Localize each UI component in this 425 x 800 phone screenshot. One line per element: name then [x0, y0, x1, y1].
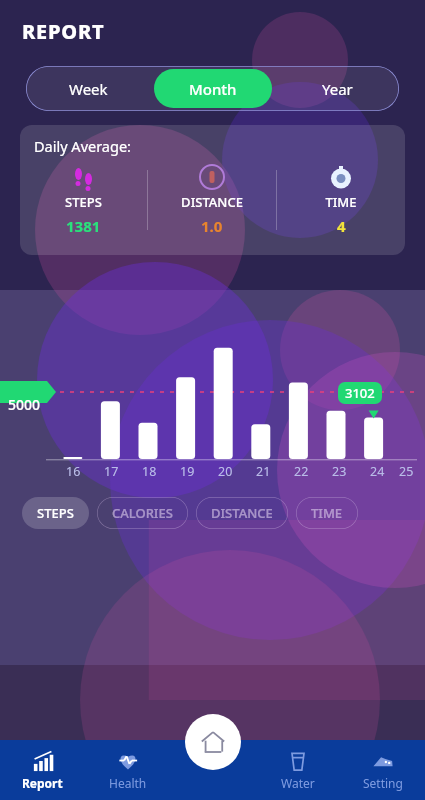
staticText: 16	[66, 463, 81, 480]
staticText: DISTANCE	[211, 504, 273, 522]
button[interactable]: TIME	[277, 164, 405, 236]
button[interactable]: TIME	[296, 497, 358, 529]
staticText: 24	[370, 463, 385, 480]
staticText: Water	[281, 775, 315, 791]
staticText: 1381	[66, 216, 101, 236]
staticText: Daily Average:	[34, 136, 131, 156]
staticText: 21	[256, 463, 271, 480]
button[interactable]: Month	[154, 69, 272, 108]
button[interactable]: Report	[0, 740, 85, 800]
staticText: 25	[399, 463, 414, 480]
button[interactable]: Home	[185, 714, 241, 770]
staticText: Year	[322, 79, 353, 99]
staticText: 22	[294, 463, 309, 480]
button[interactable]: STEPS	[20, 164, 147, 236]
staticText: REPORT	[22, 18, 105, 45]
button[interactable]: DISTANCE	[148, 164, 276, 236]
button[interactable]: STEPS	[22, 497, 89, 529]
staticText: TIME	[311, 504, 343, 522]
staticText: Health	[109, 775, 147, 791]
button[interactable]: Setting	[340, 740, 425, 800]
staticText: 19	[180, 463, 195, 480]
staticText: Week	[69, 79, 108, 99]
button[interactable]: Health	[85, 740, 170, 800]
staticText: 23	[332, 463, 347, 480]
staticText: TIME	[325, 193, 357, 211]
staticText: Setting	[363, 775, 403, 791]
staticText: 1.0	[201, 216, 223, 236]
staticText: STEPS	[37, 504, 74, 522]
staticText: 5000	[8, 395, 41, 414]
button[interactable]: Water	[255, 740, 340, 800]
button[interactable]: Week	[29, 69, 148, 108]
staticText: DISTANCE	[181, 193, 243, 211]
button[interactable]: Year	[278, 69, 396, 108]
staticText: STEPS	[65, 193, 102, 211]
button[interactable]: CALORIES	[97, 497, 188, 529]
staticText: 20	[218, 463, 233, 480]
staticText: 17	[104, 463, 119, 480]
staticText: Report	[22, 775, 63, 791]
staticText: 3102	[345, 384, 375, 402]
staticText: 4	[337, 216, 346, 236]
button[interactable]: DISTANCE	[196, 497, 288, 529]
staticText: 18	[142, 463, 157, 480]
staticText: Month	[189, 79, 237, 99]
staticText: CALORIES	[112, 504, 173, 522]
